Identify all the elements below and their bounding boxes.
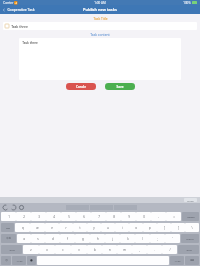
button[interactable]: tab: [1, 223, 14, 232]
button[interactable]: ': [165, 234, 180, 243]
button[interactable]: f: [60, 234, 75, 243]
button[interactable]: g: [75, 234, 90, 243]
staticText: Task three: [11, 24, 28, 28]
staticText: c: [62, 248, 64, 252]
staticText: [: [164, 226, 165, 230]
button[interactable]: a: [17, 234, 31, 243]
button[interactable]: delete: [182, 212, 199, 221]
button[interactable]: 5: [61, 212, 76, 221]
button[interactable]: Cooperative Task: [0, 5, 37, 14]
button[interactable]: o: [129, 223, 143, 232]
button[interactable]: /: [162, 245, 177, 254]
button[interactable]: n: [102, 245, 117, 254]
staticText: Task three: [22, 41, 38, 45]
staticText: 6: [83, 215, 85, 219]
button[interactable]: q: [15, 223, 30, 232]
button[interactable]: s: [31, 234, 45, 243]
button[interactable]: [: [157, 223, 171, 232]
button[interactable]: Task three: [19, 38, 181, 80]
staticText: v: [78, 248, 80, 252]
button[interactable]: ☺: [1, 256, 11, 265]
button[interactable]: 8: [106, 212, 121, 221]
button[interactable]: v: [71, 245, 87, 254]
button[interactable]: y: [87, 223, 101, 232]
button[interactable]: Cancle: [66, 83, 96, 90]
button[interactable]: b: [87, 245, 102, 254]
button[interactable]: Save: [105, 83, 135, 90]
button[interactable]: t: [73, 223, 87, 232]
button[interactable]: Done: [184, 198, 197, 202]
button[interactable]: ,: [132, 245, 147, 254]
button[interactable]: 3: [31, 212, 46, 221]
button[interactable]: 2: [16, 212, 31, 221]
staticText: 1: [8, 215, 10, 219]
button[interactable]: ⌨: [185, 256, 199, 265]
button[interactable]: w: [30, 223, 45, 232]
staticText: Carrier 📶: [3, 1, 18, 5]
button[interactable]: shift: [1, 245, 22, 254]
button[interactable]: x: [39, 245, 55, 254]
button[interactable]: u: [101, 223, 115, 232]
button[interactable]: z: [23, 245, 39, 254]
button[interactable]: =: [166, 212, 181, 221]
staticText: r: [65, 226, 67, 230]
button[interactable]: .: [147, 245, 162, 254]
button[interactable]: h: [90, 234, 105, 243]
button[interactable]: .?123: [170, 256, 184, 265]
button[interactable]: 中英: [1, 234, 16, 243]
button[interactable]: -: [151, 212, 166, 221]
staticText: f: [67, 237, 68, 241]
staticText: shift: [186, 248, 192, 251]
button[interactable]: ⬤: [27, 256, 36, 265]
button[interactable]: .?123: [12, 256, 26, 265]
button[interactable]: p: [143, 223, 157, 232]
staticText: 9: [128, 215, 130, 219]
staticText: h: [97, 237, 99, 241]
staticText: p: [149, 226, 151, 230]
staticText: tab: [6, 226, 10, 229]
button[interactable]: 9: [121, 212, 136, 221]
button[interactable]: Undo: [3, 205, 8, 210]
button[interactable]: return: [181, 234, 199, 243]
button[interactable]: ;: [150, 234, 165, 243]
button[interactable]: m: [117, 245, 132, 254]
staticText: w: [36, 226, 39, 230]
button[interactable]: e: [45, 223, 59, 232]
button[interactable]: Paste: [19, 205, 24, 210]
button[interactable]: Redo: [11, 205, 16, 210]
staticText: .: [154, 248, 155, 252]
button[interactable]: ]: [171, 223, 185, 232]
staticText: z: [30, 248, 32, 252]
button[interactable]: r: [59, 223, 73, 232]
button[interactable]: c: [55, 245, 71, 254]
button[interactable]: Task three: [3, 22, 197, 30]
staticText: Cancle: [76, 85, 86, 89]
staticText: g: [82, 237, 84, 241]
staticText: =: [173, 215, 175, 219]
staticText: 8: [113, 215, 115, 219]
staticText: ': [172, 237, 173, 241]
button[interactable]: j: [105, 234, 120, 243]
button[interactable]: 0: [136, 212, 151, 221]
button[interactable]: shift: [178, 245, 199, 254]
staticText: -: [158, 215, 159, 219]
button[interactable]: d: [45, 234, 60, 243]
button[interactable]: i: [115, 223, 129, 232]
staticText: ⌨: [190, 259, 194, 262]
button[interactable]: l: [135, 234, 150, 243]
button[interactable]: 4: [46, 212, 61, 221]
button[interactable]: k: [120, 234, 135, 243]
staticText: 100%: [183, 1, 191, 5]
staticText: a: [23, 237, 25, 241]
button[interactable]: \: [185, 223, 199, 232]
button[interactable]: 7: [91, 212, 106, 221]
staticText: ,: [139, 248, 140, 252]
staticText: s: [37, 237, 39, 241]
button[interactable]: 1: [1, 212, 16, 221]
button[interactable]: 6: [76, 212, 91, 221]
staticText: i: [122, 226, 123, 230]
